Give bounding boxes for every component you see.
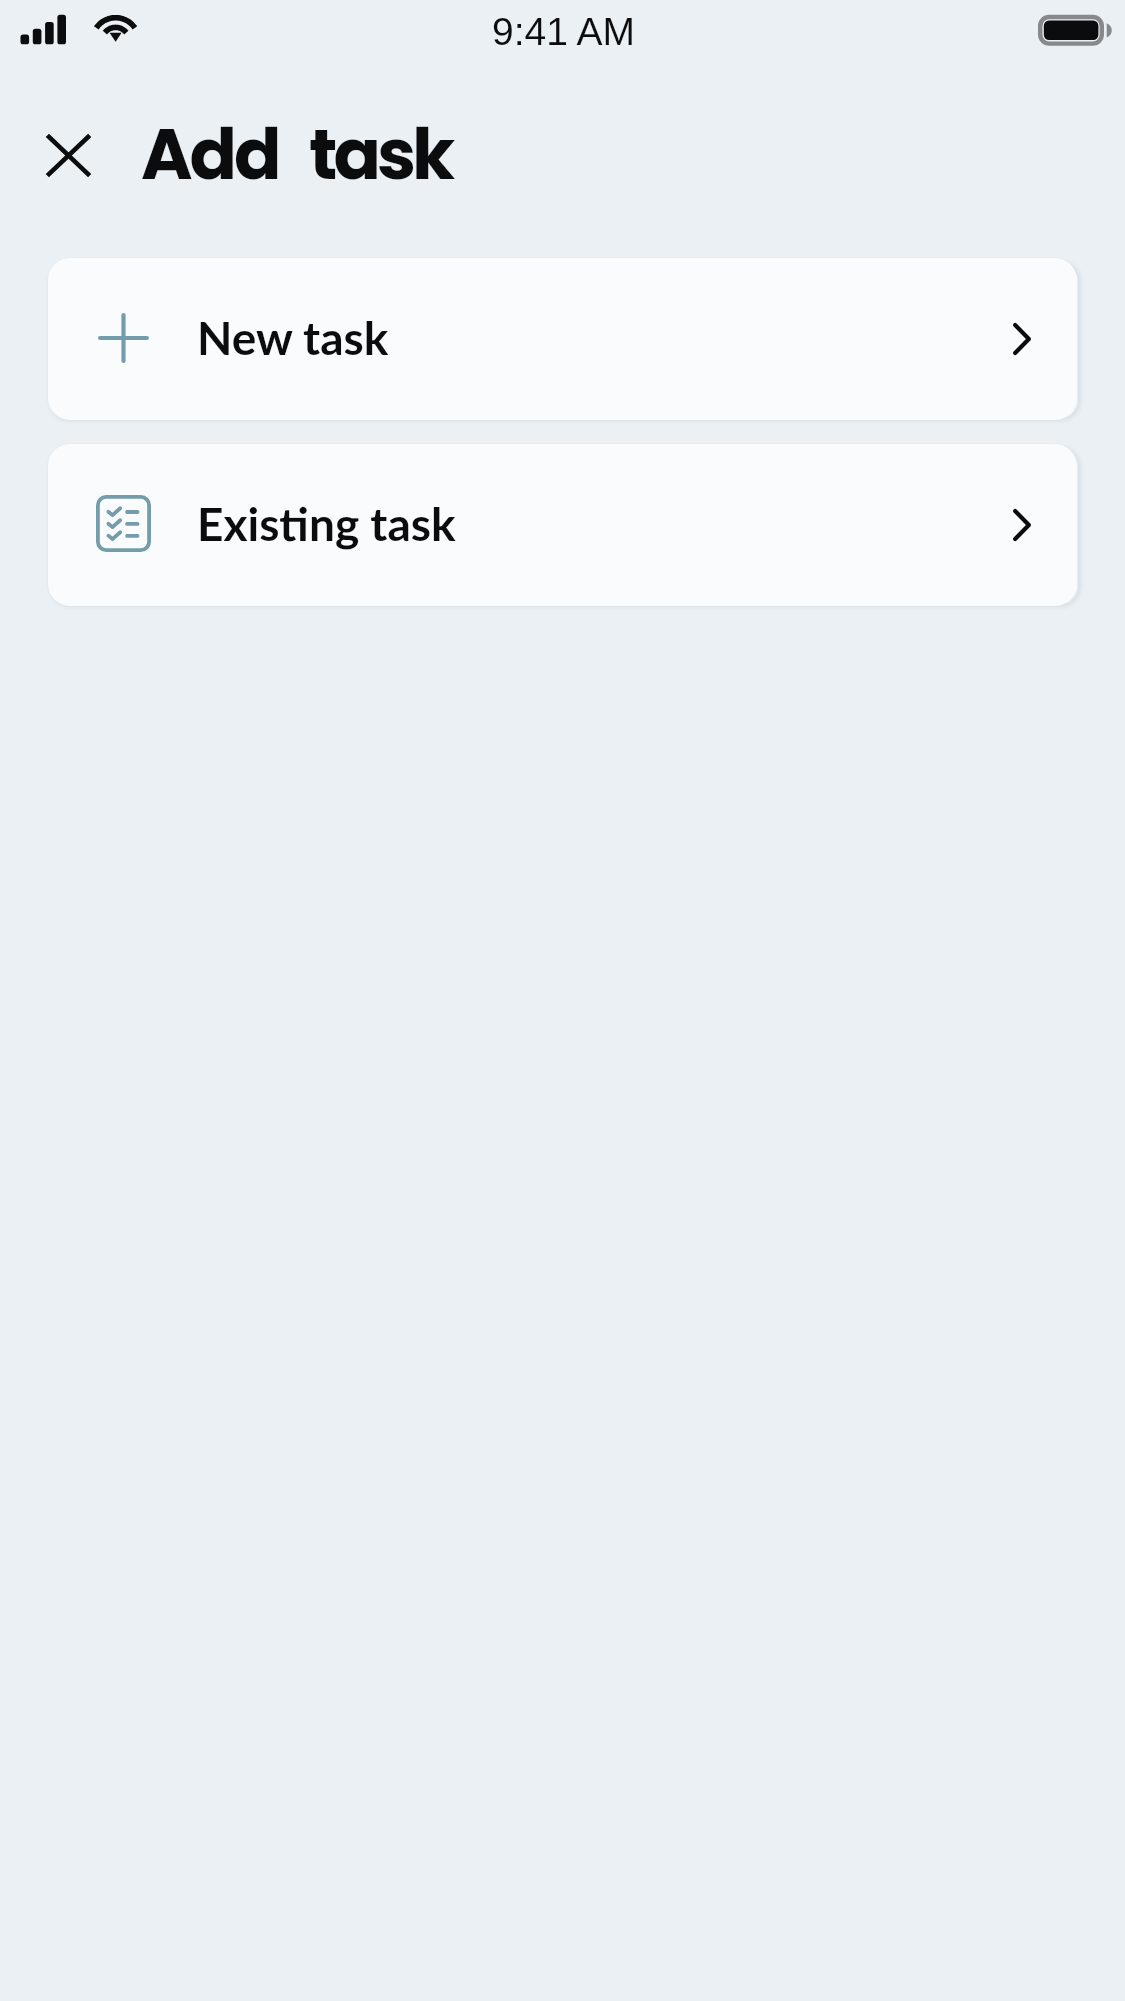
staticText: Existing task bbox=[197, 496, 456, 551]
button[interactable]: Existing task bbox=[48, 444, 1077, 606]
button[interactable]: New task bbox=[48, 258, 1077, 420]
staticText: New task bbox=[197, 310, 389, 365]
staticText: 9:41 AM bbox=[1, 10, 1125, 54]
staticText: task bbox=[309, 105, 452, 203]
button[interactable]: Close bbox=[24, 111, 113, 200]
staticText: Add bbox=[141, 105, 279, 203]
